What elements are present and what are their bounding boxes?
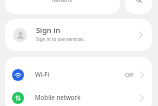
button[interactable]: Wi-Fi (5, 63, 152, 86)
button[interactable]: Sign in (5, 19, 152, 51)
staticText: Mobile network (35, 93, 81, 101)
staticText: Sign in to use services. (36, 36, 85, 42)
staticText: Off (125, 71, 134, 78)
button[interactable]: Mobile network (5, 86, 152, 106)
staticText: Network (52, 0, 73, 4)
button[interactable]: Search (125, 0, 152, 14)
staticText: Wi-Fi (35, 70, 50, 78)
button[interactable]: Network (5, 0, 120, 14)
staticText: Sign in (36, 25, 61, 35)
